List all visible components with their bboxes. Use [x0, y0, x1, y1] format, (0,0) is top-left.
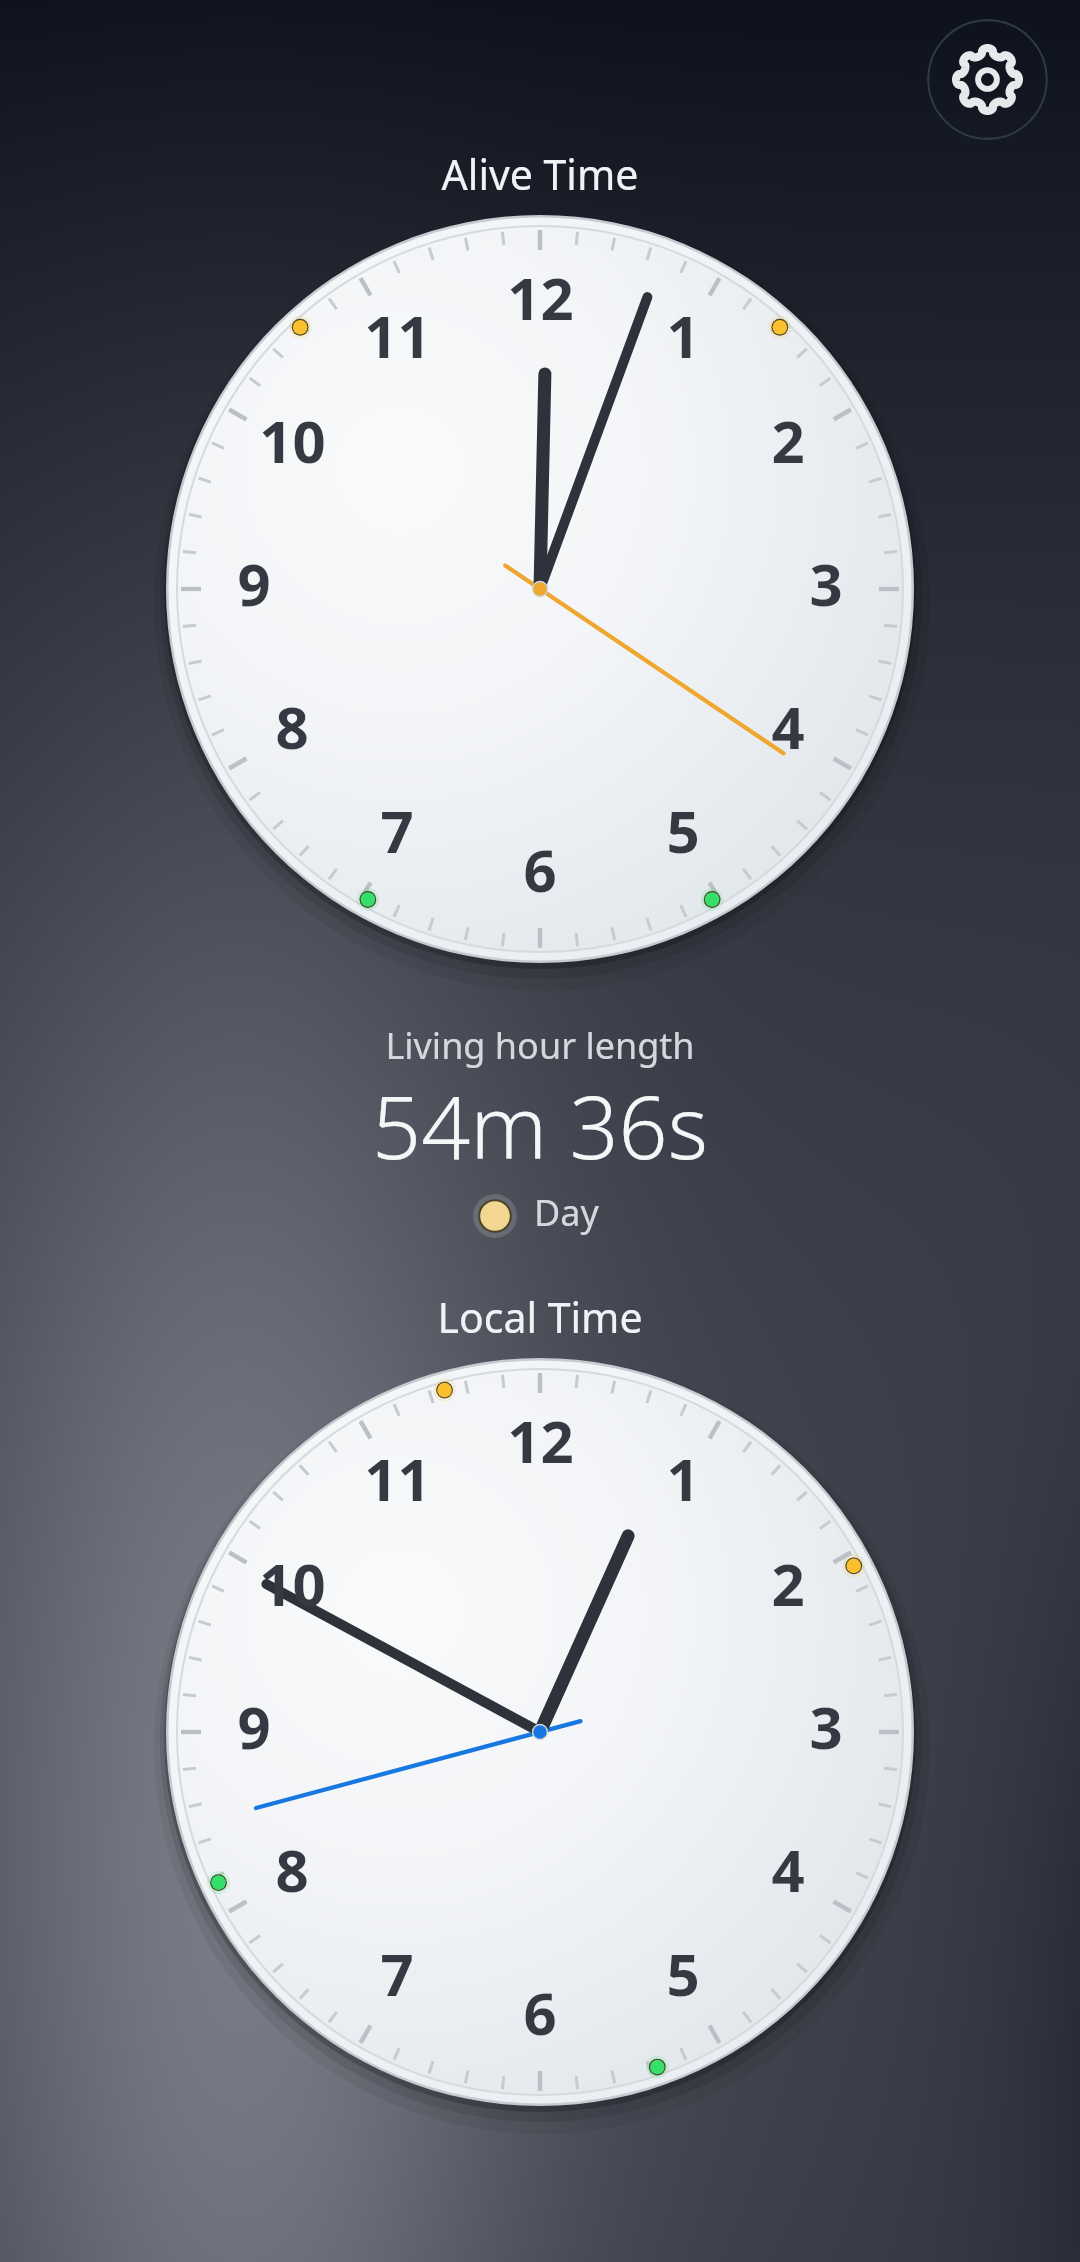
staticText: 5 [666, 1934, 700, 2013]
button[interactable]: Day [472, 1191, 599, 1240]
staticText: 9 [237, 544, 271, 623]
staticText: 11 [364, 1439, 431, 1518]
staticText: 1 [666, 1439, 700, 1518]
staticText: 6 [523, 830, 557, 909]
staticText: 10 [259, 1544, 326, 1623]
staticText: Day [534, 1188, 599, 1237]
staticText: 1 [666, 296, 700, 375]
staticText: Alive Time [0, 146, 1080, 2262]
staticText: Living hour length [0, 1021, 1080, 2262]
staticText: 3 [809, 544, 843, 623]
staticText: 4 [771, 687, 805, 766]
staticText: 8 [275, 687, 309, 766]
staticText: 2 [771, 1544, 805, 1623]
staticText: 11 [364, 296, 431, 375]
staticText: 7 [380, 1934, 414, 2013]
staticText: 8 [275, 1830, 309, 1909]
staticText: 12 [507, 1401, 574, 1480]
staticText: 4 [771, 1830, 805, 1909]
staticText: Local Time [0, 1289, 1080, 2262]
staticText: 54m 36s [0, 1067, 1080, 2262]
staticText: 9 [237, 1687, 271, 1766]
staticText: 2 [771, 401, 805, 480]
staticText: 10 [259, 401, 326, 480]
staticText: 6 [523, 1973, 557, 2052]
staticText: 12 [507, 258, 574, 337]
staticText: 7 [380, 791, 414, 870]
staticText: 3 [809, 1687, 843, 1766]
button[interactable]: Settings [927, 19, 1048, 140]
staticText: 5 [666, 791, 700, 870]
